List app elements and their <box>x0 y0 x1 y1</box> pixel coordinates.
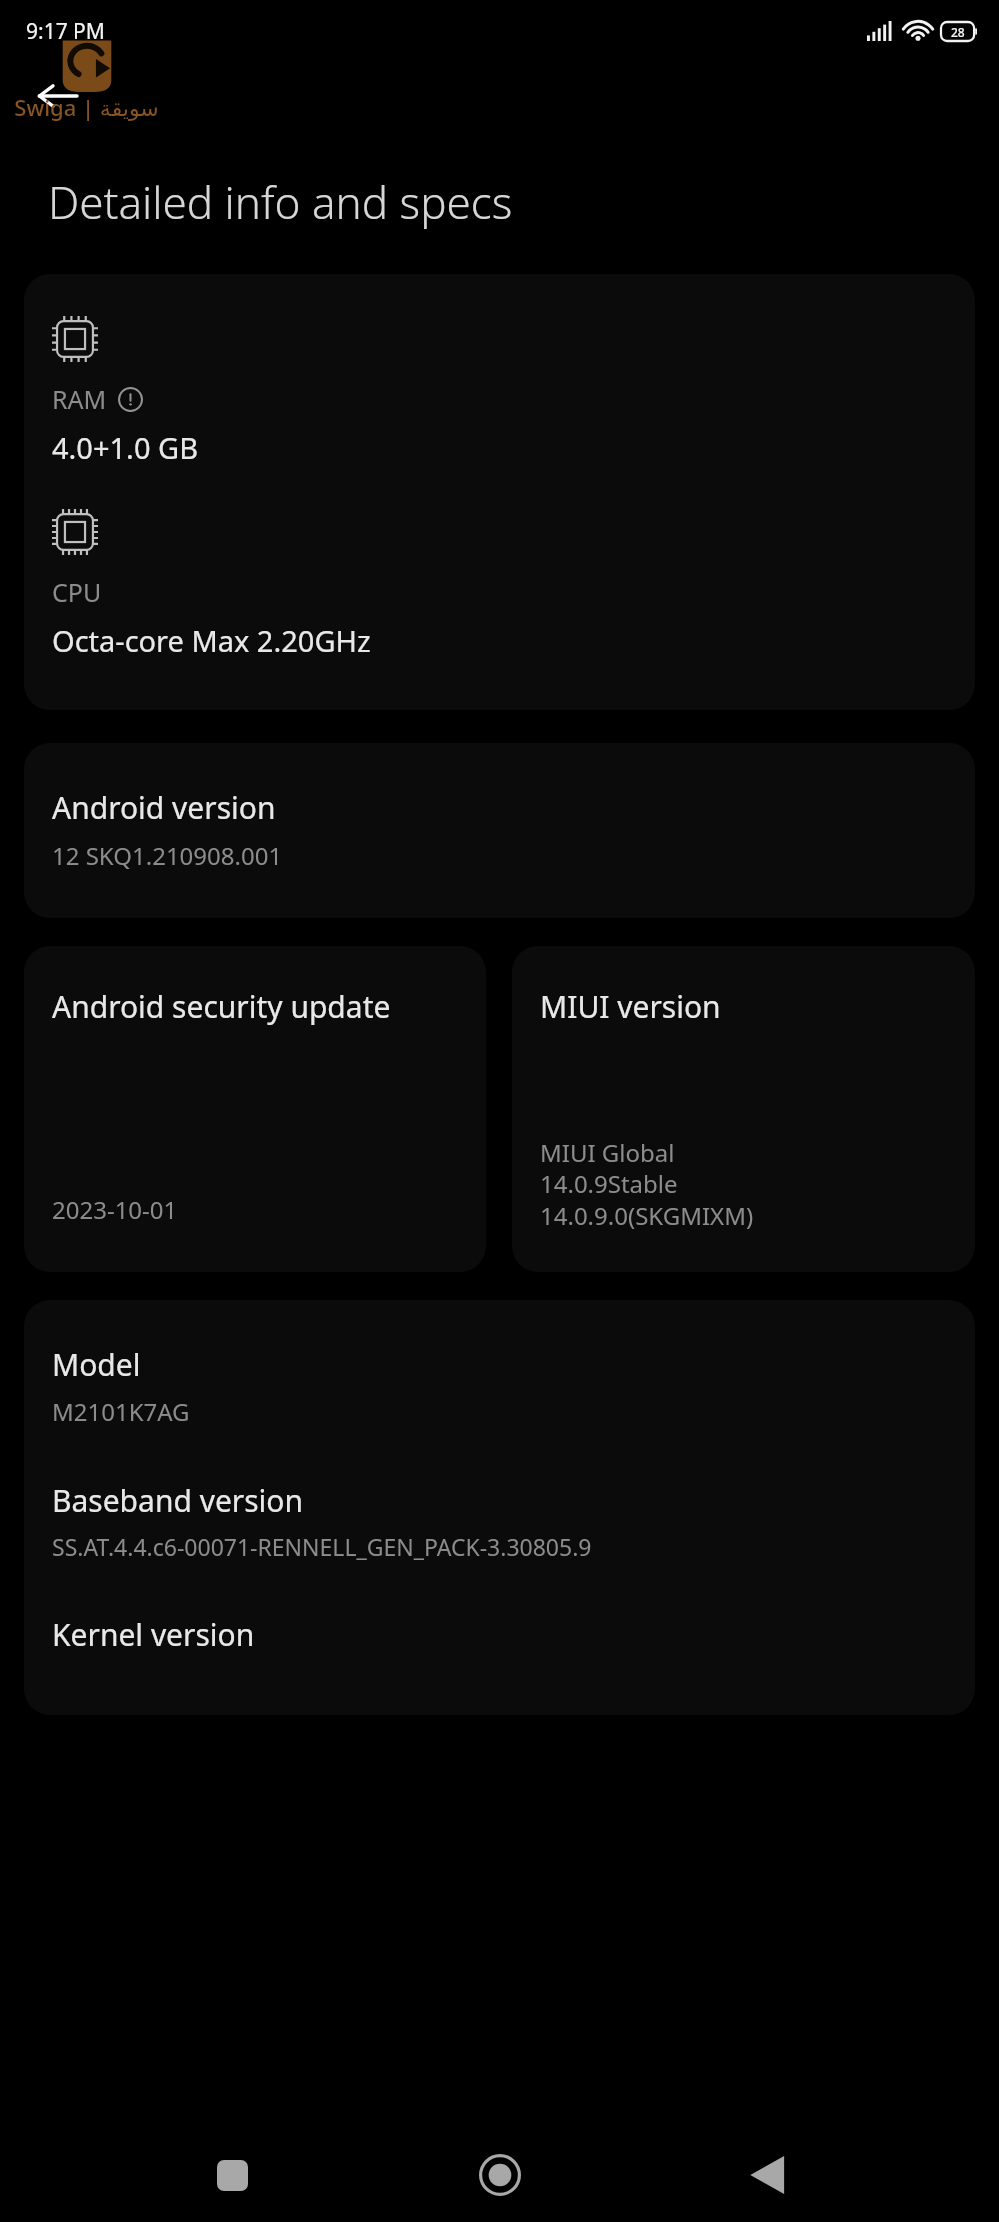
staticText: RAM <box>52 382 107 416</box>
staticText: 28 <box>951 24 965 40</box>
button[interactable]: RAM <box>24 274 975 710</box>
staticText: MIUI Global 14.0.9Stable 14.0.9.0(SKGMIX… <box>540 1136 754 1232</box>
staticText: 9:17 PM <box>26 17 105 46</box>
button[interactable]: Recents <box>196 2139 268 2211</box>
staticText: Android version <box>52 787 276 828</box>
staticText: Model <box>52 1344 141 1385</box>
staticText: Baseband version <box>52 1480 304 1521</box>
staticText: CPU <box>52 575 102 609</box>
staticText: Octa-core Max 2.20GHz <box>52 621 371 660</box>
staticText: MIUI version <box>540 986 721 1027</box>
staticText: 4.0+1.0 GB <box>52 428 198 467</box>
staticText: Detailed info and specs <box>48 172 513 232</box>
staticText: Kernel version <box>52 1614 255 1655</box>
button[interactable]: Android version <box>24 743 975 918</box>
staticText: M2101K7AG <box>52 1395 190 1428</box>
button[interactable]: Back <box>731 2139 803 2211</box>
button[interactable]: MIUI version <box>512 946 975 1272</box>
button[interactable]: Back <box>30 69 84 123</box>
button[interactable]: Android security update <box>24 946 486 1272</box>
button[interactable]: Model <box>24 1300 975 1715</box>
staticText: SS.AT.4.4.c6-00071-RENNELL_GEN_PACK-3.30… <box>52 1531 592 1562</box>
staticText: 2023-10-01 <box>52 1193 178 1226</box>
staticText: Swiga | سويقة <box>14 92 159 122</box>
staticText: Android security update <box>52 986 391 1027</box>
button[interactable]: Home <box>464 2139 536 2211</box>
staticText: 12 SKQ1.210908.001 <box>52 839 283 872</box>
